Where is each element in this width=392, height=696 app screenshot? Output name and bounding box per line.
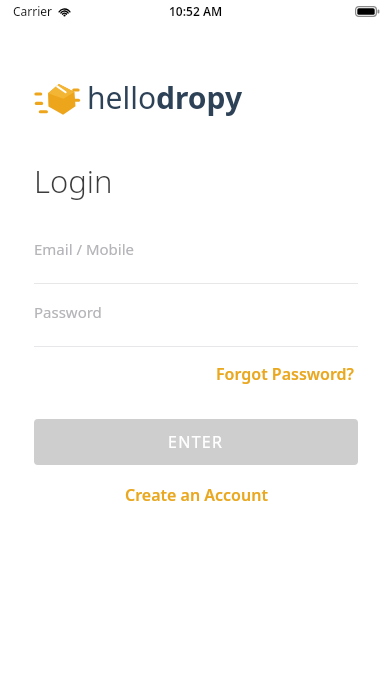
other: Wi-Fi [58, 6, 71, 16]
staticText: Carrier [13, 3, 53, 19]
button[interactable]: Forgot Password? [212, 357, 358, 391]
button[interactable]: Password [34, 295, 358, 329]
staticText: hellodropy [87, 77, 243, 118]
staticText: ENTER [168, 431, 224, 453]
staticText: Login [34, 160, 113, 202]
staticText: 10:52 AM [169, 3, 223, 19]
button[interactable]: ENTER [34, 419, 358, 465]
button[interactable]: Create an Account [113, 477, 280, 513]
button[interactable]: Email / Mobile [34, 232, 358, 266]
other: hellodropy logo [35, 80, 79, 116]
staticText: Email / Mobile [34, 239, 135, 259]
staticText: Password [34, 302, 102, 322]
other: Battery [355, 6, 380, 17]
